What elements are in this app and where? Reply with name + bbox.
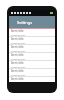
staticText: Item title: [11, 69, 24, 73]
button[interactable]: Item title: [9, 53, 55, 60]
button[interactable]: Item title: [9, 37, 55, 44]
staticText: Item title: [11, 61, 24, 65]
staticText: Subtitle text: [11, 65, 26, 68]
staticText: Item title: [11, 37, 24, 41]
button[interactable]: Item title: [9, 29, 55, 36]
staticText: Item title: [11, 53, 24, 57]
staticText: Settings: [17, 20, 33, 25]
staticText: Subtitle text: [11, 33, 26, 36]
staticText: Item title: [11, 77, 24, 81]
staticText: Subtitle text: [11, 49, 26, 52]
staticText: Subtitle text: [11, 41, 26, 44]
button[interactable]: Item title: [9, 45, 55, 52]
button[interactable]: Item title: [9, 61, 55, 68]
button[interactable]: Item title: [9, 69, 55, 76]
staticText: Item title: [11, 45, 24, 49]
staticText: Subtitle text: [11, 57, 26, 60]
staticText: Item title: [11, 29, 24, 33]
button[interactable]: Item title: [9, 77, 55, 82]
staticText: Subtitle text: [11, 73, 26, 76]
